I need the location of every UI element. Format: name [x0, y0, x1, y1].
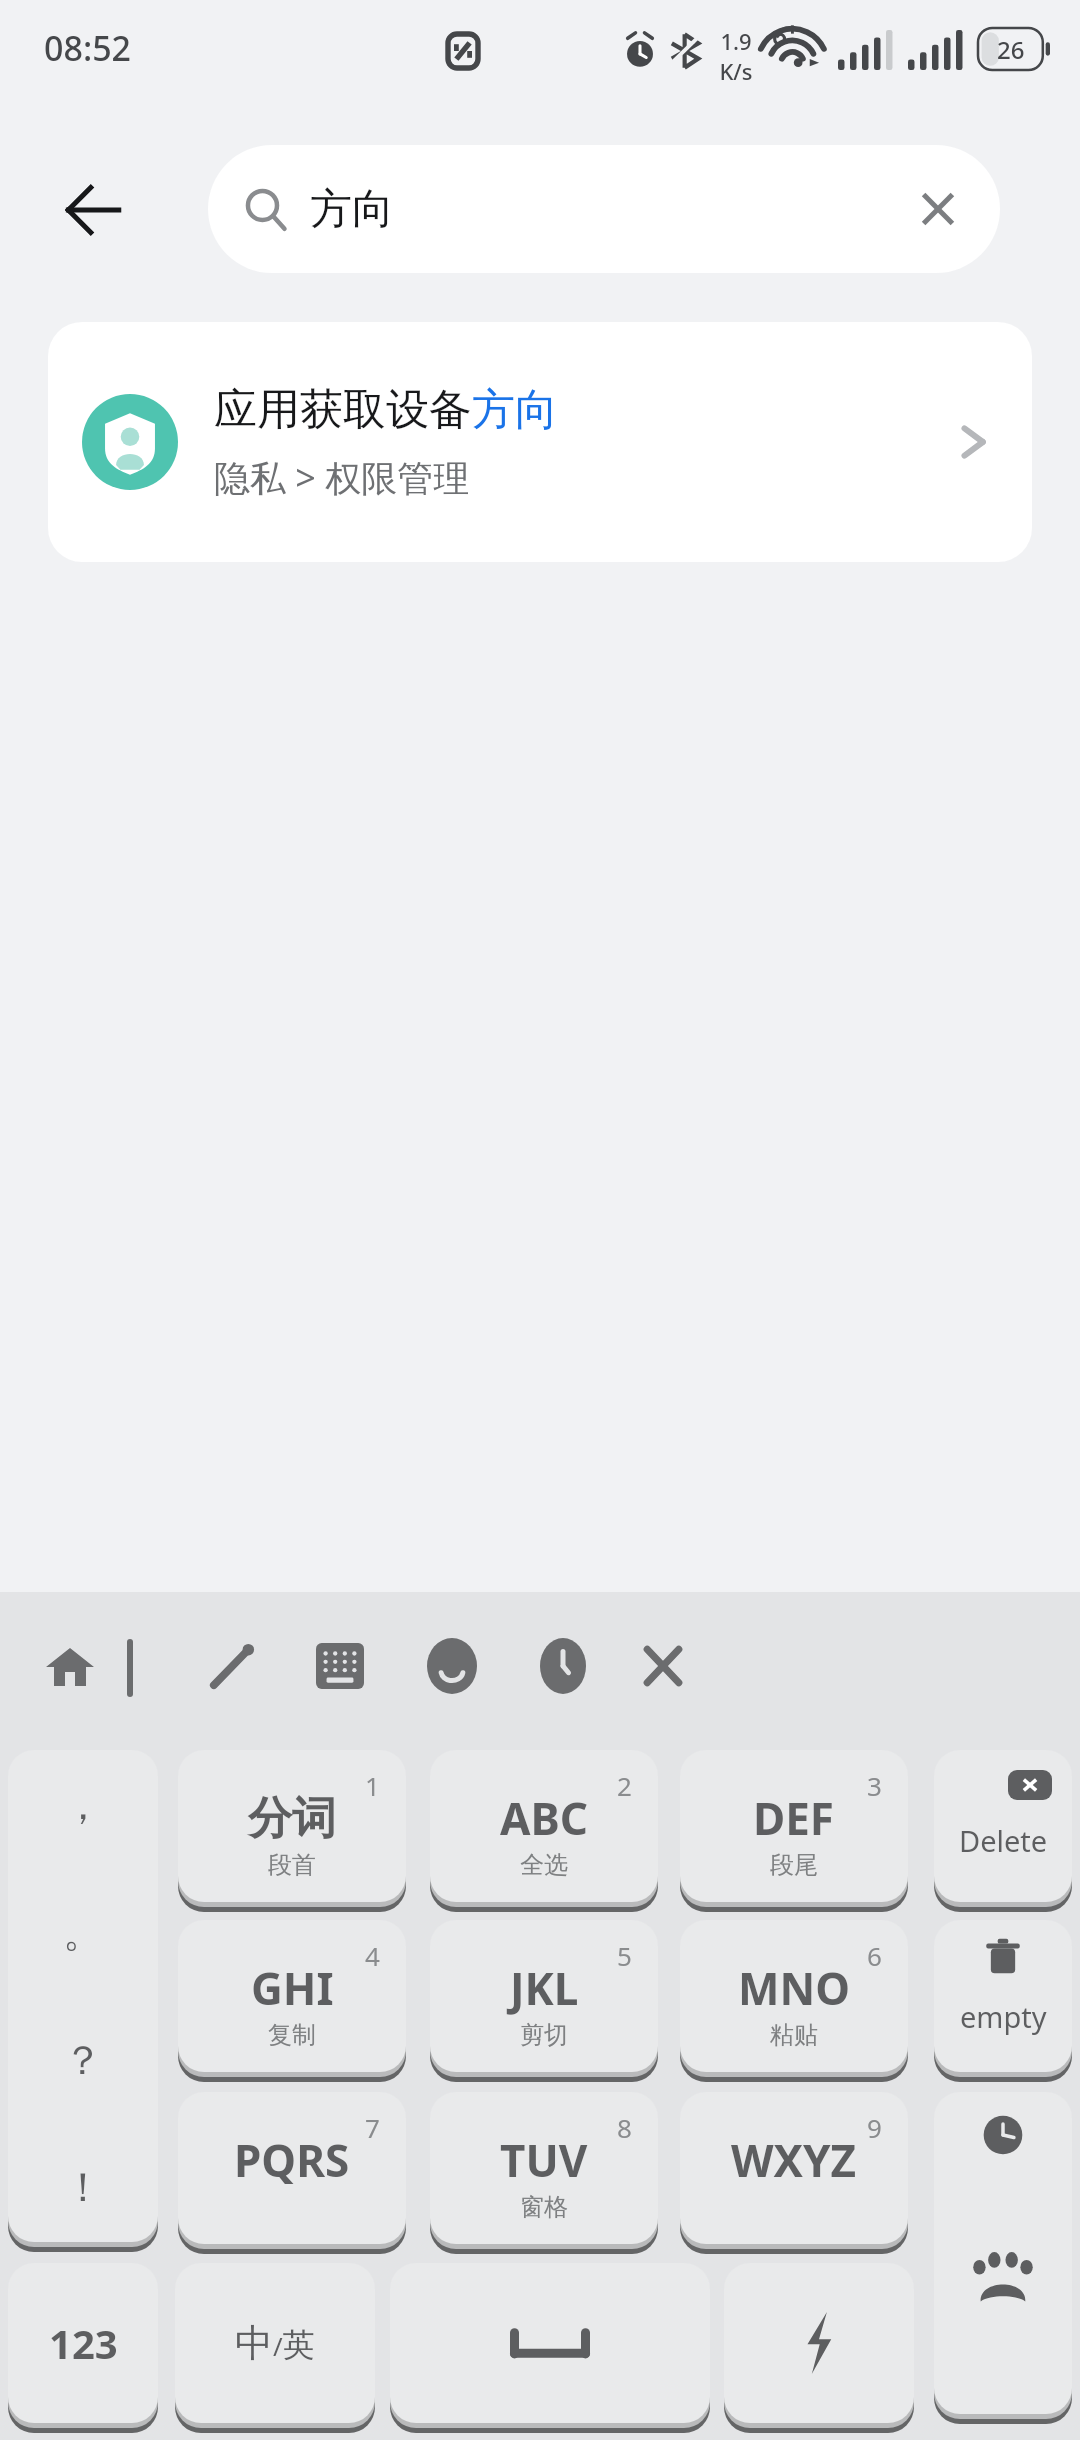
staticText: 全选	[520, 1850, 568, 1880]
staticText: GHI	[251, 1958, 334, 2018]
staticText: 26	[997, 33, 1025, 66]
staticText: K/s	[719, 56, 753, 86]
staticText: 1.9	[720, 26, 752, 56]
button[interactable]: Toolbar action	[292, 1618, 388, 1714]
staticText: 3	[867, 1768, 882, 1803]
button[interactable]: Toolbar action	[615, 1618, 711, 1714]
staticText: 123	[49, 2316, 118, 2370]
staticText: WXYZ	[731, 2130, 857, 2190]
button[interactable]: 3	[680, 1750, 908, 1902]
button[interactable]: Recent and emoji	[934, 2092, 1072, 2414]
staticText: TUV	[500, 2130, 588, 2190]
staticText: 1	[365, 1768, 380, 1803]
button[interactable]: Toolbar action	[22, 1618, 118, 1714]
button[interactable]: 1	[178, 1750, 406, 1902]
staticText: empty	[960, 1997, 1047, 2036]
staticText: 8	[617, 2110, 632, 2145]
button[interactable]: Back	[48, 165, 138, 255]
button[interactable]: 方向	[208, 145, 1000, 273]
button[interactable]: Enter	[724, 2263, 914, 2423]
button[interactable]: ，	[8, 1750, 158, 2242]
staticText: 中/英	[235, 2319, 315, 2367]
button[interactable]: 中/英	[175, 2263, 375, 2423]
staticText: DEF	[753, 1788, 835, 1848]
staticText: 08:52	[44, 25, 132, 71]
staticText: MNO	[738, 1958, 851, 2018]
staticText: PQRS	[234, 2130, 350, 2190]
staticText: 2	[617, 1768, 632, 1803]
button[interactable]: 6	[680, 1920, 908, 2072]
staticText: ABC	[500, 1788, 588, 1848]
button[interactable]: 4	[178, 1920, 406, 2072]
staticText: 9	[867, 2110, 882, 2145]
staticText: 隐私 > 权限管理	[214, 453, 470, 502]
staticText: 剪切	[520, 2020, 568, 2050]
button[interactable]: Delete	[934, 1750, 1072, 1902]
button[interactable]: 应用获取设备方向	[48, 322, 1032, 562]
staticText: ，	[63, 1780, 103, 1830]
button[interactable]: Toolbar action	[515, 1618, 611, 1714]
staticText: JKL	[510, 1958, 579, 2018]
staticText: 5	[617, 1938, 632, 1973]
staticText: 4	[365, 1938, 380, 1973]
staticText: 。	[63, 1907, 103, 1957]
button[interactable]: Clear clipboard	[934, 1920, 1072, 2072]
staticText: 分词	[248, 1791, 336, 1846]
staticText: 7	[365, 2110, 380, 2145]
staticText: ！	[63, 2162, 103, 2212]
staticText: 复制	[268, 2020, 316, 2050]
staticText: 方向	[310, 183, 394, 236]
button[interactable]: Space	[390, 2263, 710, 2423]
button[interactable]: 8	[430, 2092, 658, 2244]
staticText: 段尾	[770, 1850, 818, 1880]
button[interactable]: Toolbar action	[404, 1618, 500, 1714]
staticText: 段首	[268, 1850, 316, 1880]
button[interactable]: Clear	[894, 165, 982, 253]
staticText: 应用获取设备方向	[214, 383, 558, 437]
staticText: 粘贴	[770, 2020, 818, 2050]
button[interactable]: Toolbar action	[184, 1618, 280, 1714]
button[interactable]: 123	[8, 2263, 158, 2423]
staticText: ？	[63, 2035, 103, 2085]
staticText: Delete	[959, 1821, 1048, 1860]
staticText: 6	[867, 1938, 882, 1973]
staticText: 窗格	[520, 2192, 568, 2222]
button[interactable]: 2	[430, 1750, 658, 1902]
button[interactable]: 9	[680, 2092, 908, 2244]
button[interactable]: 7	[178, 2092, 406, 2244]
button[interactable]: 5	[430, 1920, 658, 2072]
